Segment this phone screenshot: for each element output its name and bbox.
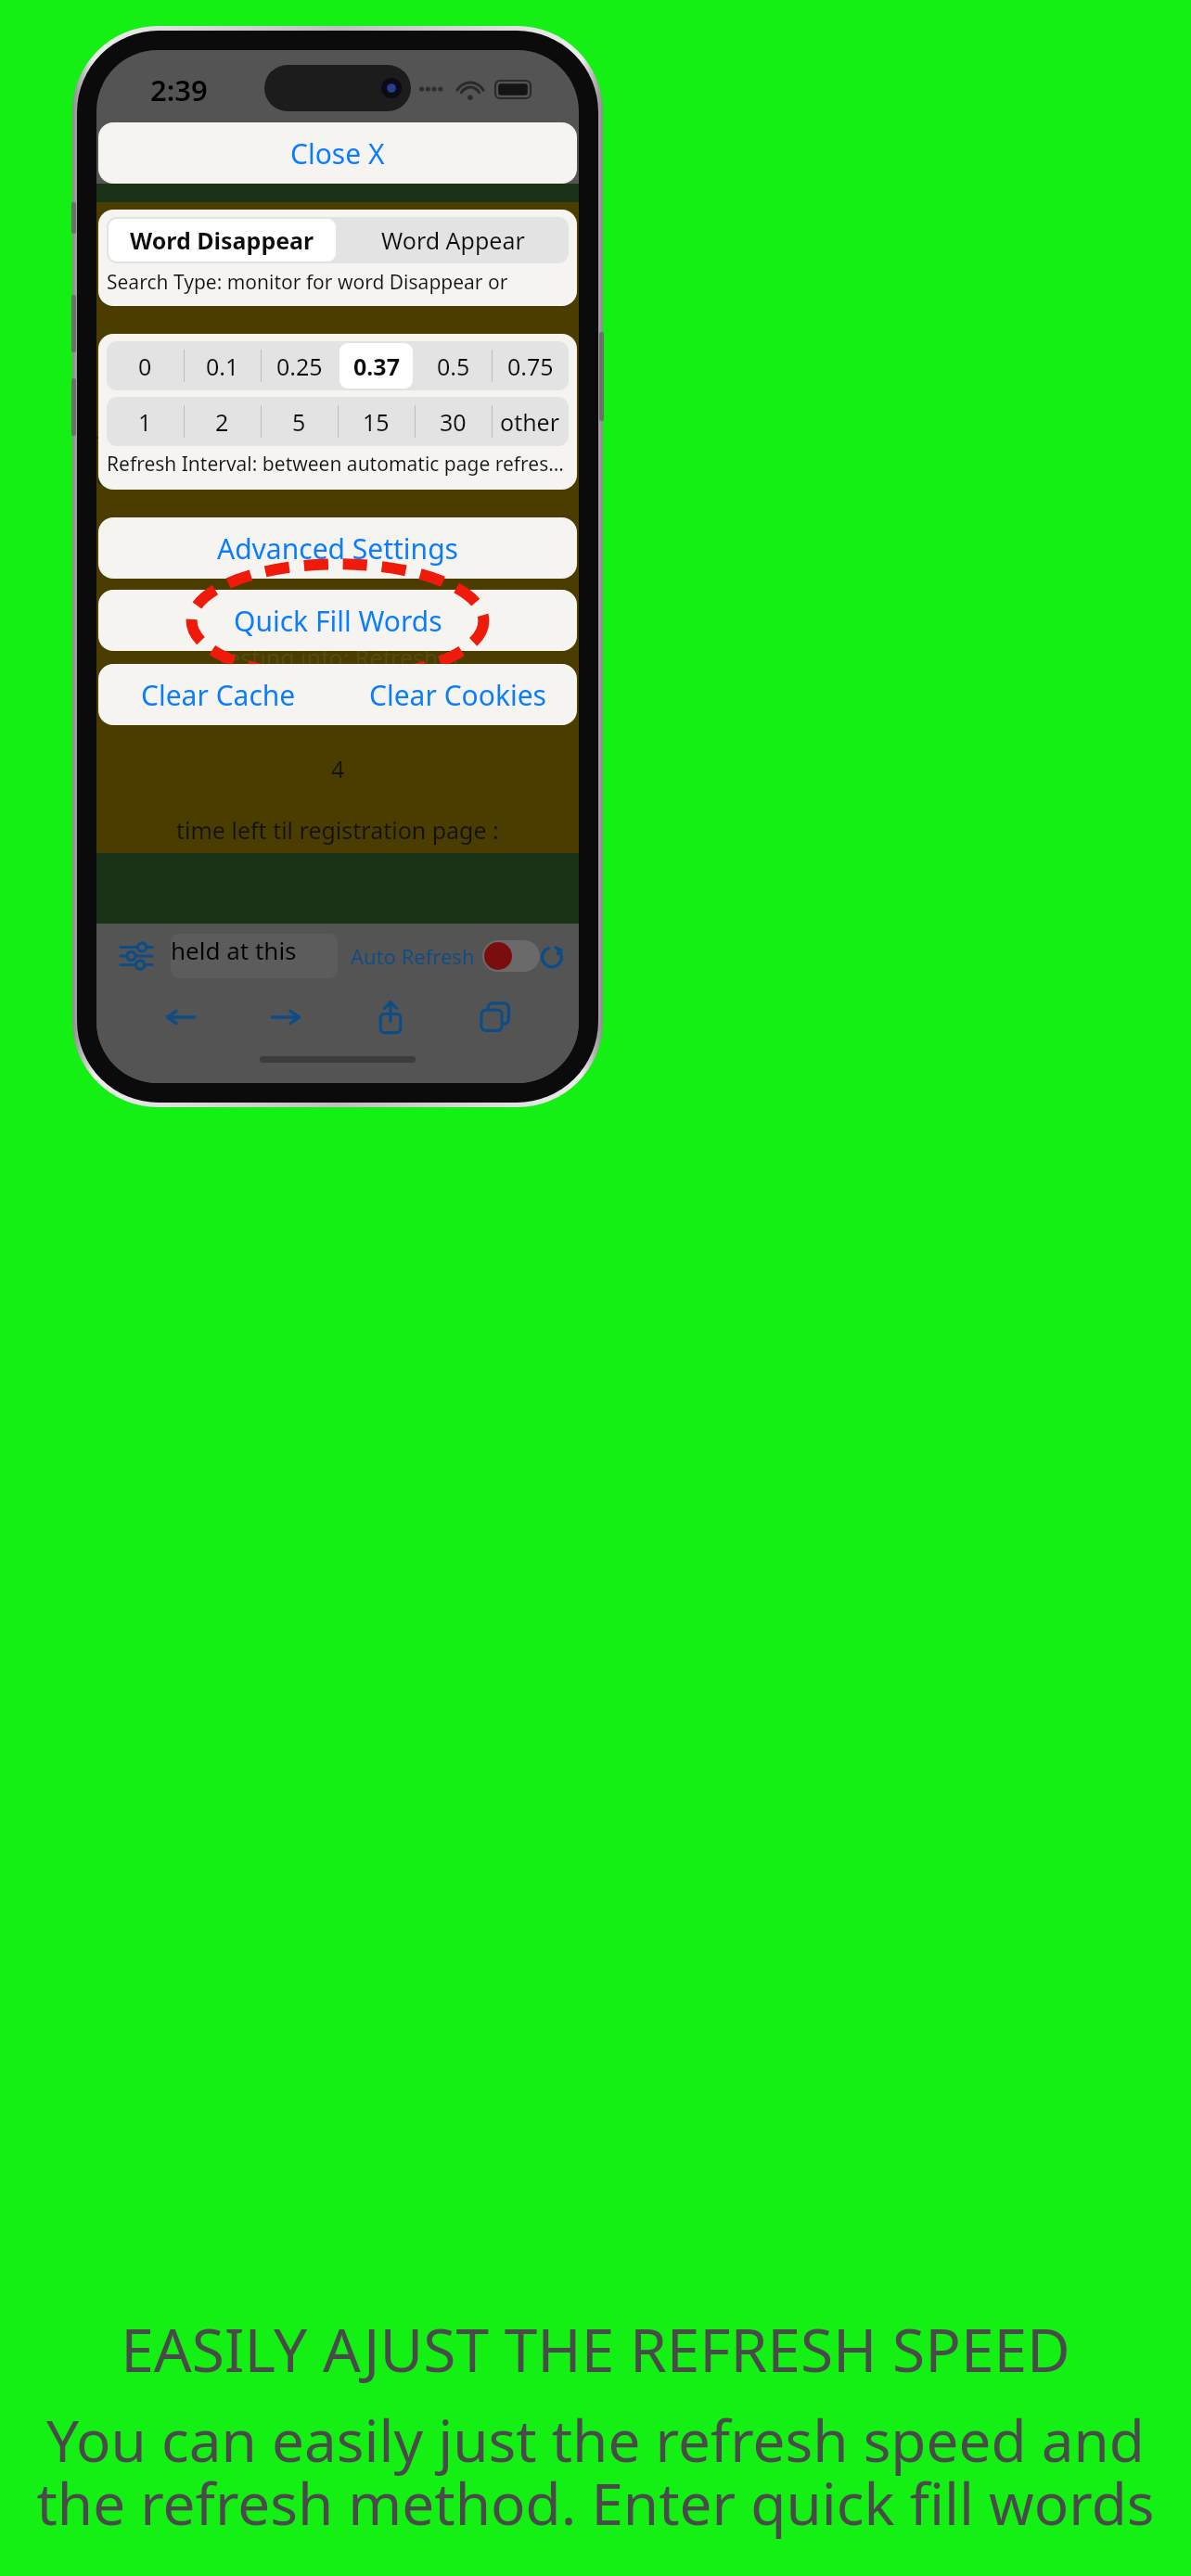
button[interactable]: 0.5 <box>416 343 490 389</box>
staticText: 5 <box>292 406 306 438</box>
staticText: 0 <box>138 351 152 382</box>
button[interactable]: Reload <box>540 933 564 979</box>
button[interactable]: Tabs <box>442 988 547 1046</box>
staticText: Clear Cookies <box>369 676 546 714</box>
staticText: 1 <box>138 406 152 438</box>
staticText: other <box>500 406 560 438</box>
button[interactable]: 30 <box>416 399 490 444</box>
button[interactable]: 0 <box>109 343 182 389</box>
button[interactable]: Close X <box>98 122 577 184</box>
staticText: This page will auto refresh and attempt … <box>96 428 579 491</box>
button[interactable]: 15 <box>339 399 413 444</box>
staticText: Back to Home Page <box>231 249 444 280</box>
staticText: Word Appear <box>381 224 525 256</box>
staticText: Quick Fill Words <box>234 602 442 640</box>
staticText: Search Type: monitor for word Disappear … <box>107 269 569 299</box>
button[interactable]: 0.75 <box>493 343 567 389</box>
staticText: 2 <box>215 406 229 438</box>
staticText: EASILY AJUST THE REFRESH SPEED <box>121 2309 1070 2390</box>
staticText: Close X <box>290 134 385 172</box>
staticText: You can easily just the refresh speed an… <box>17 2401 1174 2543</box>
staticText: 0.1 <box>206 351 239 382</box>
button[interactable]: Auto Refresh toggle <box>482 940 540 972</box>
button[interactable]: Forward <box>233 988 338 1046</box>
staticText: 2:39 <box>150 70 208 109</box>
staticText: Refresh Interval: between automatic page… <box>107 451 569 478</box>
staticText: time left til registration page : <box>176 814 499 846</box>
button[interactable]: 5 <box>263 399 336 444</box>
staticText: 0.25 <box>276 351 323 382</box>
staticText: Testing info: Refreshin <box>216 642 459 673</box>
staticText: Clear Cache <box>141 676 296 714</box>
staticText: Please have your registration number(s), <box>117 530 559 562</box>
button[interactable]: 2 <box>186 399 259 444</box>
staticText: 30 <box>440 406 467 438</box>
button[interactable]: Quick Fill Words <box>98 590 577 651</box>
button[interactable]: Advanced Settings <box>98 517 577 579</box>
button[interactable]: held at this page <box>171 934 338 978</box>
button[interactable]: Word Disappear <box>109 219 336 261</box>
staticText: 0.5 <box>437 351 470 382</box>
staticText: 0.75 <box>507 351 554 382</box>
staticText: Word Disappear <box>130 224 314 256</box>
button[interactable]: 0.37 <box>339 343 413 389</box>
staticText: 15 <box>363 406 390 438</box>
button[interactable]: Settings <box>111 931 161 981</box>
button[interactable]: Share <box>338 988 442 1046</box>
button[interactable]: 0.25 <box>263 343 336 389</box>
staticText: 4 <box>331 753 345 784</box>
staticText: Advanced Settings <box>217 529 458 567</box>
button[interactable]: 1 <box>109 399 182 444</box>
button[interactable]: Clear Cookies <box>338 664 577 725</box>
staticText: Auto Refresh <box>351 942 475 970</box>
button[interactable]: Back <box>128 988 233 1046</box>
button[interactable]: Clear Cache <box>98 664 338 725</box>
staticText: 0.37 <box>353 351 400 382</box>
button[interactable]: 0.1 <box>186 343 259 389</box>
button[interactable]: other <box>493 399 567 444</box>
staticText: registered phone(s) <box>231 590 444 621</box>
staticText: held at this page <box>171 934 338 978</box>
button[interactable]: Word Appear <box>339 219 567 261</box>
